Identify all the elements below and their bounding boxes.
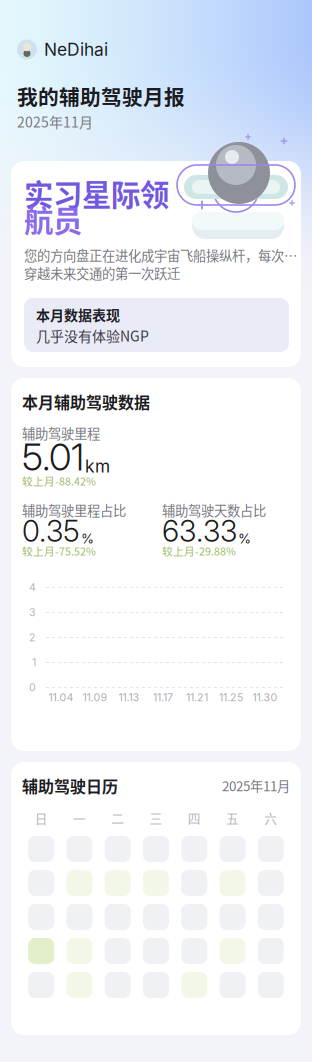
staticText: 11.04 [48, 691, 73, 704]
staticText: 您的方向盘正在进化成宇宙飞船操纵杆，每次辅助驾驶都是 [24, 245, 301, 265]
staticText: 11.25 [219, 691, 243, 704]
staticText: 三 [149, 809, 162, 827]
staticText: 二 [111, 809, 124, 827]
staticText: 本月辅助驾驶数据 [22, 390, 150, 413]
staticText: 1 [32, 656, 36, 669]
staticText: 本月数据表现 [36, 304, 120, 325]
staticText: 4 [29, 581, 36, 594]
staticText: 较上月-75.52% [22, 543, 96, 559]
staticText: 四 [188, 809, 201, 827]
staticText: 5.01 [22, 434, 84, 480]
staticText: 11.21 [186, 691, 208, 704]
staticText: 五 [226, 809, 239, 827]
staticText: 六 [264, 809, 277, 827]
staticText: 11.17 [153, 691, 173, 704]
staticText: 较上月-29.88% [162, 543, 236, 559]
staticText: 2025年11月 [222, 776, 290, 795]
staticText: 一 [73, 809, 86, 827]
staticText: 航员 [24, 198, 82, 240]
staticText: 0 [29, 681, 36, 694]
staticText: 11.30 [252, 691, 277, 704]
staticText: 辅助驾驶天数占比 [162, 500, 266, 520]
staticText: % [81, 531, 94, 547]
staticText: 11.13 [118, 691, 139, 704]
staticText: 0.35 [22, 513, 80, 549]
staticText: 2025年11月 [17, 111, 93, 132]
staticText: NeDihai [44, 39, 108, 60]
staticText: 实习星际领 [24, 172, 169, 214]
staticText: 较上月-88.42% [22, 473, 96, 489]
staticText: 辅助驾驶里程 [22, 423, 100, 443]
staticText: 穿越未来交通的第一次跃迁 [24, 263, 180, 283]
staticText: 辅助驾驶日历 [22, 774, 118, 797]
staticText: 辅助驾驶里程占比 [22, 500, 126, 520]
staticText: 63.33 [162, 513, 237, 549]
staticText: 3 [29, 606, 36, 619]
staticText: 我的辅助驾驶月报 [17, 81, 185, 111]
staticText: km [85, 456, 110, 477]
button[interactable]: NeDihai [17, 39, 108, 60]
staticText: 11.09 [82, 691, 107, 704]
staticText: % [238, 531, 251, 547]
staticText: 几乎没有体验NGP [36, 325, 149, 346]
staticText: 日 [35, 809, 48, 827]
staticText: 2 [29, 631, 36, 644]
